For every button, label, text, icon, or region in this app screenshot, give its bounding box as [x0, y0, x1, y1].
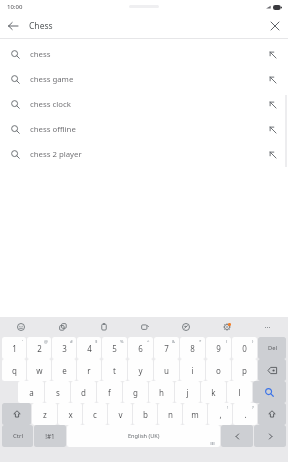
button[interactable]: s: [45, 381, 70, 403]
staticText: 5: [112, 343, 117, 354]
button[interactable]: 7: [154, 337, 179, 359]
staticText: b: [143, 409, 148, 420]
staticText: m: [191, 409, 199, 420]
button[interactable]: .: [233, 403, 257, 425]
button[interactable]: p: [232, 359, 257, 381]
button[interactable]: o: [206, 359, 231, 381]
button[interactable]: r: [77, 359, 101, 381]
staticText: n: [168, 409, 173, 420]
button[interactable]: GIF: [124, 317, 165, 337]
button[interactable]: y: [128, 359, 153, 381]
button[interactable]: 6: [128, 337, 153, 359]
button[interactable]: a: [18, 381, 44, 403]
staticText: s: [56, 387, 60, 398]
staticText: o: [216, 365, 221, 376]
button[interactable]: x: [58, 403, 82, 425]
button[interactable]: n: [158, 403, 182, 425]
staticText: ,: [219, 409, 222, 420]
staticText: y: [138, 365, 143, 376]
button[interactable]: Use suggestion chess 2 player: [258, 142, 288, 167]
button[interactable]: 0: [232, 337, 257, 359]
staticText: ^: [147, 339, 150, 345]
button[interactable]: 2: [27, 337, 51, 359]
button[interactable]: Clipboard: [83, 317, 124, 337]
button[interactable]: Next: [254, 425, 286, 447]
button[interactable]: Settings: [206, 317, 247, 337]
staticText: 7: [164, 343, 169, 354]
button[interactable]: chess game: [0, 67, 288, 92]
button[interactable]: v: [108, 403, 132, 425]
button[interactable]: w: [27, 359, 51, 381]
button[interactable]: Use suggestion chess: [258, 42, 288, 67]
staticText: *: [199, 339, 202, 345]
button[interactable]: More options: [247, 317, 288, 337]
staticText: q: [12, 365, 17, 376]
staticText: i: [191, 365, 194, 376]
button[interactable]: Shift: [2, 403, 31, 425]
button[interactable]: Space, English (UK): [67, 425, 220, 447]
button[interactable]: i: [180, 359, 205, 381]
button[interactable]: f: [97, 381, 122, 403]
button[interactable]: chess 2 player: [0, 142, 288, 167]
button[interactable]: Shift: [258, 403, 286, 425]
staticText: .: [244, 409, 247, 420]
button[interactable]: 1: [2, 337, 26, 359]
staticText: 4: [87, 343, 92, 354]
button[interactable]: Delete: [258, 337, 286, 359]
staticText: x: [68, 409, 73, 420]
button[interactable]: u: [154, 359, 179, 381]
button[interactable]: Use suggestion chess game: [258, 67, 288, 92]
button[interactable]: Use suggestion chess clock: [258, 92, 288, 117]
button[interactable]: z: [32, 403, 57, 425]
staticText: chess game: [30, 74, 258, 85]
staticText: $: [95, 339, 98, 345]
button[interactable]: Backspace: [258, 359, 286, 381]
staticText: v: [118, 409, 123, 420]
staticText: ): [252, 339, 254, 345]
staticText: 9: [216, 343, 221, 354]
button[interactable]: b: [133, 403, 157, 425]
button[interactable]: Emoji: [0, 317, 42, 337]
button[interactable]: chess: [0, 42, 288, 67]
button[interactable]: Handwriting: [165, 317, 206, 337]
button[interactable]: t: [102, 359, 127, 381]
button[interactable]: g: [123, 381, 148, 403]
button[interactable]: d: [71, 381, 96, 403]
staticText: Chess: [29, 20, 262, 32]
button[interactable]: q: [2, 359, 26, 381]
button[interactable]: c: [83, 403, 107, 425]
button[interactable]: 5: [102, 337, 127, 359]
button[interactable]: Stickers: [42, 317, 83, 337]
button[interactable]: 9: [206, 337, 231, 359]
button[interactable]: ,: [208, 403, 232, 425]
button[interactable]: m: [183, 403, 207, 425]
button[interactable]: Control: [2, 425, 33, 447]
button[interactable]: l: [227, 381, 252, 403]
staticText: !: [227, 405, 229, 411]
staticText: &: [172, 339, 176, 345]
button[interactable]: chess offline: [0, 117, 288, 142]
button[interactable]: 8: [180, 337, 205, 359]
staticText: Del: [268, 344, 277, 352]
staticText: %: [120, 339, 124, 345]
staticText: Ctrl: [13, 432, 23, 440]
button[interactable]: k: [201, 381, 226, 403]
staticText: chess offline: [30, 124, 258, 135]
button[interactable]: Clear search: [262, 13, 288, 38]
button[interactable]: 3: [52, 337, 76, 359]
button[interactable]: e: [52, 359, 76, 381]
button[interactable]: Symbols: [34, 425, 66, 447]
staticText: g: [133, 387, 138, 398]
button[interactable]: Search: [253, 381, 286, 403]
button[interactable]: h: [149, 381, 174, 403]
button[interactable]: Back: [0, 13, 25, 38]
staticText: chess: [30, 49, 258, 60]
staticText: 6: [138, 343, 143, 354]
button[interactable]: Previous: [221, 425, 253, 447]
button[interactable]: 4: [77, 337, 101, 359]
staticText: @: [44, 339, 48, 345]
button[interactable]: j: [175, 381, 200, 403]
staticText: #: [70, 339, 73, 345]
button[interactable]: Use suggestion chess offline: [258, 117, 288, 142]
button[interactable]: chess clock: [0, 92, 288, 117]
